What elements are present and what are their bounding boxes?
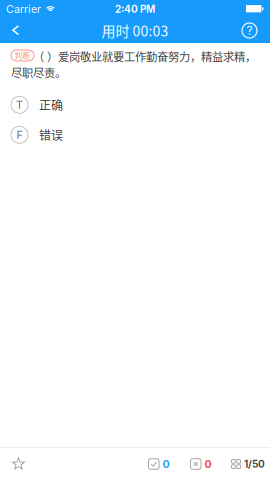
staticText: Carrier — [6, 2, 41, 15]
staticText: 用时 00:03 — [101, 20, 168, 41]
staticText: T — [16, 98, 23, 111]
button[interactable]: F — [0, 120, 270, 150]
button[interactable]: 1/50 — [225, 448, 266, 480]
button[interactable]: Help — [226, 18, 270, 43]
staticText: 0 — [204, 457, 211, 470]
staticText: F — [16, 128, 22, 141]
button[interactable]: Favorite — [0, 448, 37, 480]
staticText: 2:40 PM — [115, 3, 155, 15]
staticText: （ ）爱岗敬业就要工作勤奋努力，精益求精，尽职尽责。 — [11, 48, 256, 81]
button[interactable]: 0 — [142, 448, 175, 480]
button[interactable]: 0 — [184, 448, 217, 480]
button[interactable]: T — [0, 90, 270, 120]
button[interactable]: Back — [0, 18, 36, 43]
staticText: 1/50 — [244, 458, 265, 470]
staticText: 正确 — [39, 96, 63, 113]
staticText: 0 — [162, 457, 169, 470]
staticText: 判断 — [14, 50, 30, 61]
staticText: ? — [246, 23, 252, 38]
staticText: 错误 — [39, 126, 63, 143]
